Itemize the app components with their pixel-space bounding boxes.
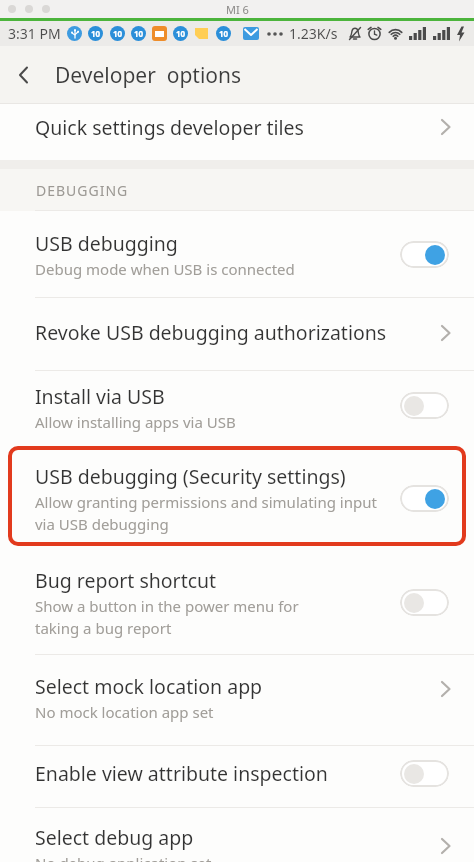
staticText: 10	[219, 28, 229, 39]
staticText: Debug mode when USB is connected	[35, 259, 295, 279]
staticText: USB debugging	[35, 230, 178, 257]
button[interactable]	[400, 589, 449, 616]
button[interactable]	[400, 392, 449, 419]
button[interactable]: Revoke USB debugging authorizations	[0, 298, 474, 371]
button[interactable]	[400, 760, 449, 787]
button[interactable]: Install via USB	[0, 371, 474, 443]
staticText: Bug report shortcut	[35, 567, 217, 594]
button[interactable]: Bug report shortcut	[0, 553, 474, 655]
staticText: MI 6	[226, 2, 249, 17]
staticText: Show a button in the power menu for	[35, 596, 299, 616]
button[interactable]: USB debugging (Security settings)	[0, 443, 474, 553]
staticText: USB debugging (Security settings)	[35, 463, 346, 490]
staticText: 10	[113, 28, 123, 39]
staticText: 10	[176, 28, 186, 39]
staticText: No mock location app set	[35, 702, 214, 722]
staticText: DEBUGGING	[36, 181, 129, 200]
button[interactable]: USB debugging	[0, 211, 474, 298]
button[interactable]	[400, 485, 449, 512]
staticText: No debug application set	[35, 853, 212, 862]
staticText: Allow installing apps via USB	[35, 412, 236, 432]
staticText: taking a bug report	[35, 618, 172, 638]
staticText: Select debug app	[35, 824, 194, 851]
staticText: Allow granting permissions and simulatin…	[35, 492, 377, 512]
staticText: 3:31 PM	[8, 24, 61, 43]
button[interactable]	[400, 241, 449, 268]
staticText: Install via USB	[35, 383, 165, 410]
button[interactable]: Select debug app	[0, 808, 474, 862]
staticText: Select mock location app	[35, 673, 263, 700]
staticText: 1.23K/s	[289, 24, 338, 43]
staticText: Quick settings developer tiles	[35, 114, 304, 141]
staticText: Revoke USB debugging authorizations	[35, 319, 387, 346]
staticText: 10	[134, 28, 144, 39]
staticText: Enable view attribute inspection	[35, 760, 328, 787]
button[interactable]	[17, 65, 30, 85]
staticText: Developer options	[55, 61, 242, 90]
button[interactable]: Quick settings developer tiles	[0, 104, 474, 160]
button[interactable]: Select mock location app	[0, 655, 474, 746]
staticText: 10	[91, 28, 101, 39]
staticText: via USB debugging	[35, 514, 169, 534]
button[interactable]: Enable view attribute inspection	[0, 746, 474, 808]
